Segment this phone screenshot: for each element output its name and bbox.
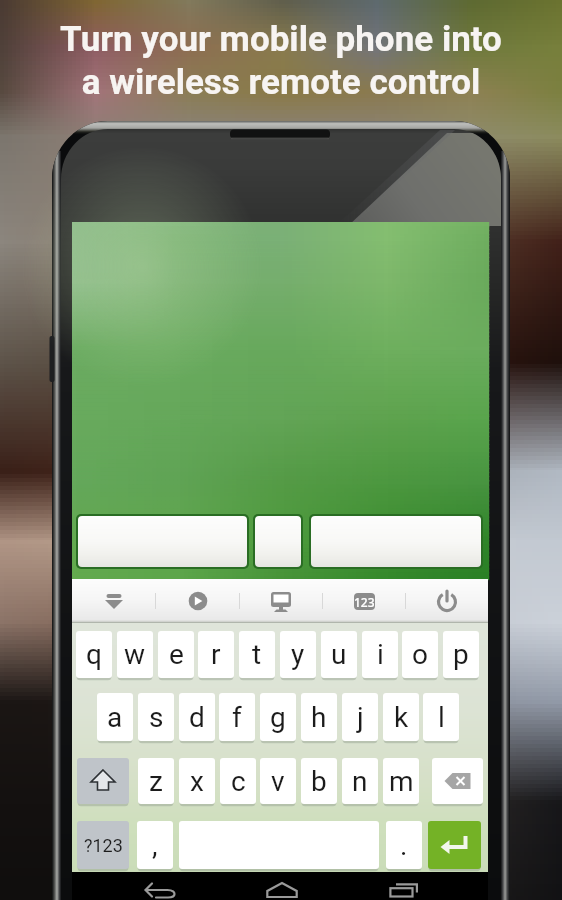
- staticText: y: [291, 638, 305, 671]
- staticText: b: [311, 765, 327, 798]
- button[interactable]: i: [362, 631, 398, 678]
- staticText: g: [270, 701, 286, 734]
- button[interactable]: ?123: [77, 821, 129, 869]
- button[interactable]: u: [321, 631, 357, 678]
- staticText: r: [211, 638, 221, 671]
- staticText: o: [412, 638, 428, 671]
- button[interactable]: j: [342, 693, 378, 741]
- staticText: l: [438, 701, 445, 734]
- button[interactable]: Power: [406, 579, 488, 623]
- button[interactable]: Home: [252, 872, 312, 900]
- button[interactable]: q: [76, 631, 112, 678]
- button[interactable]: h: [301, 693, 337, 741]
- staticText: m: [389, 765, 414, 798]
- button[interactable]: Middle click: [255, 516, 301, 567]
- staticText: d: [189, 701, 205, 734]
- button[interactable]: key: [77, 758, 129, 804]
- staticText: p: [453, 638, 469, 671]
- button[interactable]: c: [220, 758, 256, 804]
- staticText: e: [169, 638, 184, 671]
- button[interactable]: b: [301, 758, 337, 804]
- button[interactable]: a: [97, 693, 133, 741]
- staticText: v: [271, 765, 285, 798]
- staticText: a: [107, 701, 123, 734]
- button[interactable]: m: [383, 758, 419, 804]
- staticText: ,: [152, 829, 158, 862]
- button[interactable]: w: [117, 631, 153, 678]
- staticText: u: [331, 638, 347, 671]
- button[interactable]: z: [138, 758, 174, 804]
- button[interactable]: p: [443, 631, 479, 678]
- button[interactable]: l: [423, 693, 459, 741]
- button[interactable]: k: [383, 693, 419, 741]
- staticText: z: [149, 765, 163, 798]
- staticText: n: [352, 765, 368, 798]
- staticText: .: [400, 829, 408, 862]
- button[interactable]: Right click: [311, 516, 481, 567]
- staticText: c: [231, 765, 246, 798]
- button[interactable]: Left click: [78, 516, 247, 567]
- staticText: s: [149, 701, 164, 734]
- button[interactable]: f: [219, 693, 255, 741]
- button[interactable]: g: [260, 693, 296, 741]
- staticText: t: [252, 638, 262, 671]
- staticText: i: [377, 638, 384, 671]
- button[interactable]: r: [198, 631, 234, 678]
- button[interactable]: Display: [240, 579, 322, 623]
- button[interactable]: Play: [156, 579, 239, 623]
- button[interactable]: Numbers: [323, 579, 405, 623]
- button[interactable]: y: [280, 631, 316, 678]
- staticText: x: [190, 765, 204, 798]
- button[interactable]: t: [239, 631, 275, 678]
- staticText: f: [232, 701, 242, 734]
- button[interactable]: v: [260, 758, 296, 804]
- staticText: w: [124, 638, 146, 671]
- staticText: j: [357, 701, 364, 734]
- button[interactable]: Back: [130, 872, 190, 900]
- staticText: q: [86, 638, 102, 671]
- button[interactable]: d: [179, 693, 215, 741]
- staticText: ?123: [84, 835, 123, 856]
- button[interactable]: n: [342, 758, 378, 804]
- button[interactable]: s: [138, 693, 174, 741]
- staticText: Turn your mobile phone into a wireless r…: [0, 19, 562, 900]
- button[interactable]: e: [158, 631, 194, 678]
- button[interactable]: key: [432, 758, 483, 804]
- staticText: h: [311, 701, 327, 734]
- button[interactable]: x: [179, 758, 215, 804]
- staticText: k: [394, 701, 409, 734]
- button[interactable]: Recents: [373, 872, 433, 900]
- button[interactable]: o: [402, 631, 438, 678]
- button[interactable]: Hide keyboard: [72, 579, 155, 623]
- button[interactable]: key: [428, 821, 481, 869]
- button[interactable]: .: [386, 821, 422, 869]
- staticText: 123: [354, 594, 375, 610]
- button[interactable]: ,: [137, 821, 173, 869]
